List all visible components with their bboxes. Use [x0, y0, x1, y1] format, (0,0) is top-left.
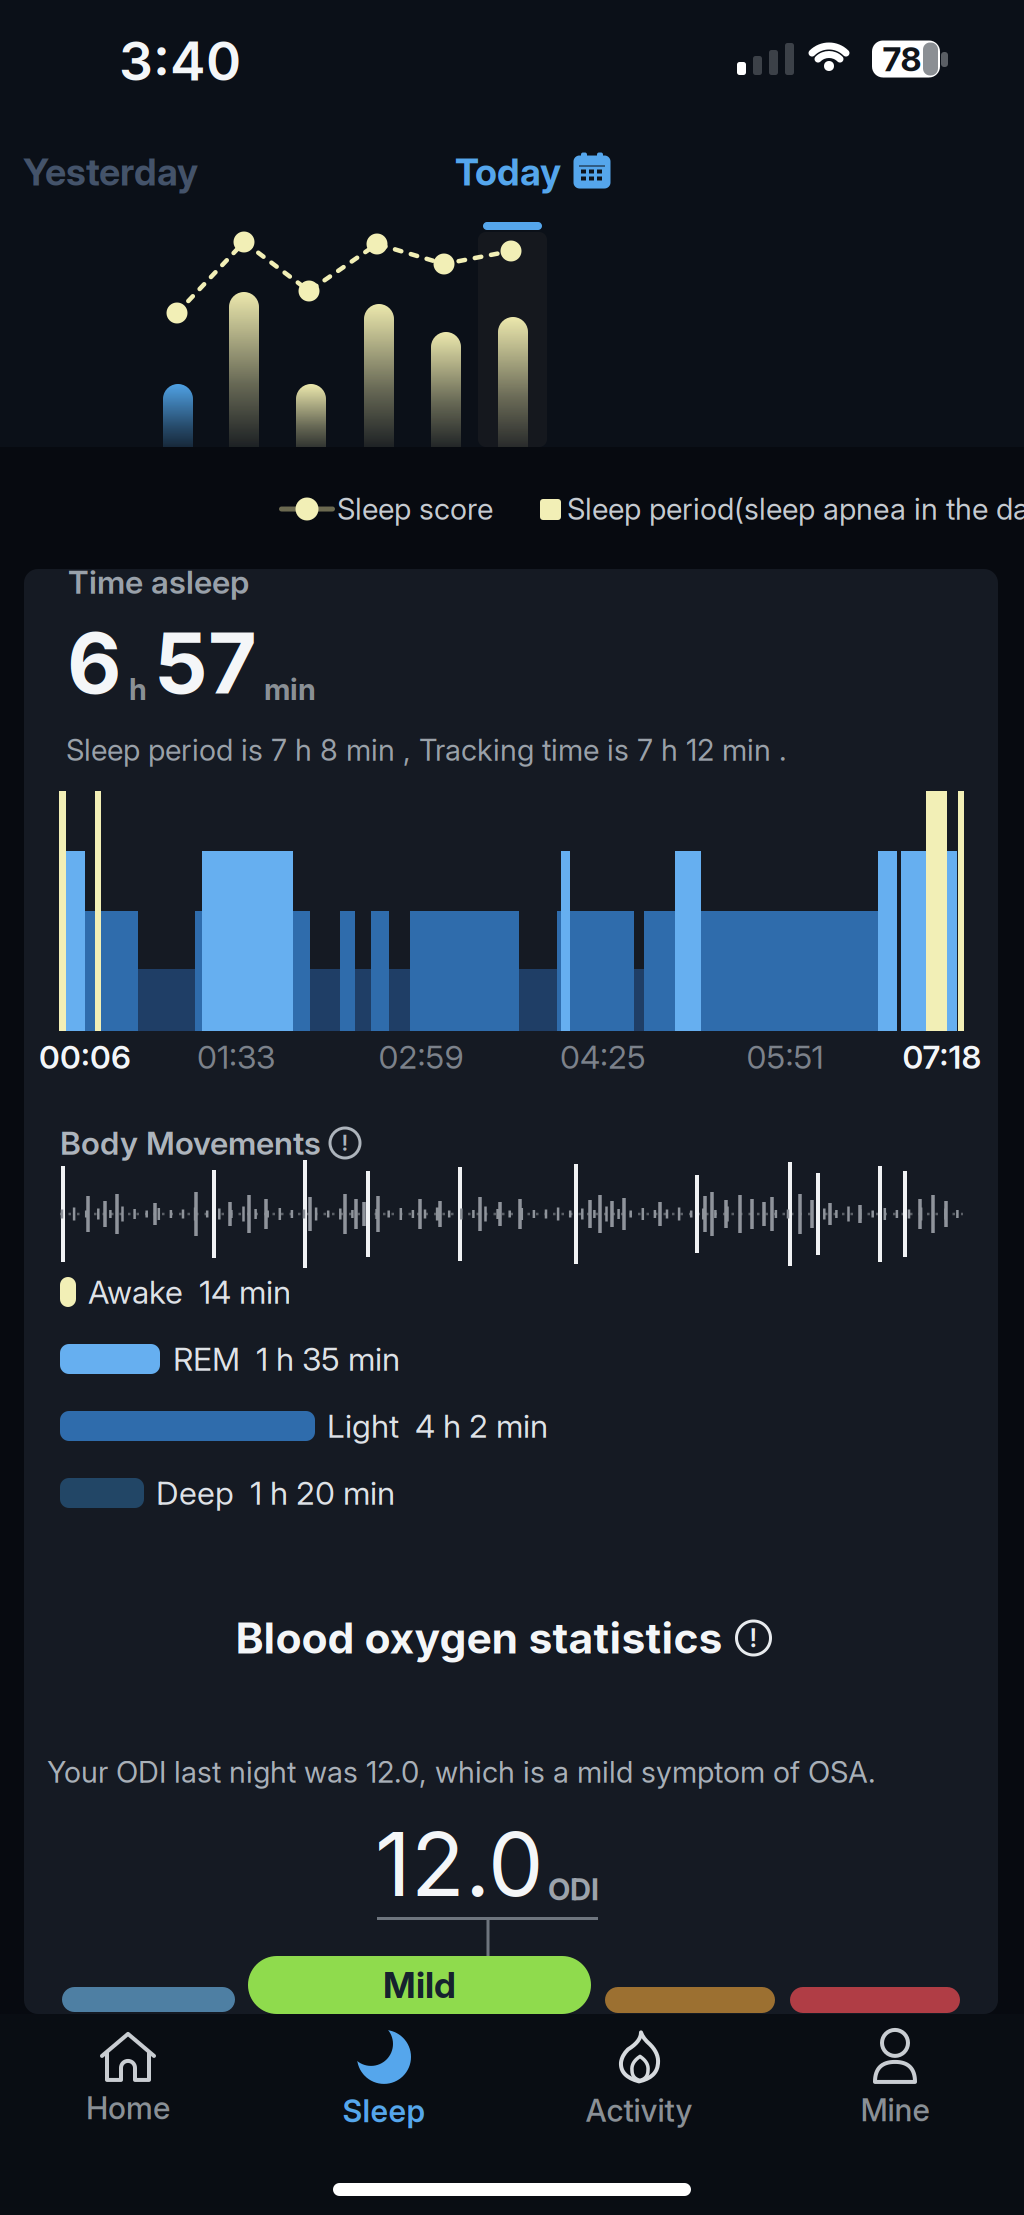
staticText: Sleep period(sleep apnea in the day [567, 492, 1024, 526]
staticText: Light 4 h 2 min [327, 1407, 548, 1445]
staticText: Body Movements [60, 1124, 321, 1162]
staticText: Time asleep [68, 563, 249, 601]
staticText: 78 [882, 39, 921, 79]
staticText: 04:25 [560, 1038, 646, 1076]
staticText: Home [86, 2090, 170, 2126]
staticText: 6 [67, 613, 122, 713]
staticText: min [264, 672, 316, 706]
staticText: ODI [548, 1872, 599, 1907]
button[interactable]: Mine [860, 2030, 929, 2128]
button[interactable]: Body movements info [330, 1128, 360, 1158]
staticText: 57 [154, 613, 257, 713]
staticText: Mild [383, 1964, 456, 2006]
staticText: Mine [860, 2092, 929, 2128]
staticText: Sleep [342, 2093, 425, 2129]
staticText: 12.0 [375, 1812, 544, 1916]
staticText: REM 1 h 35 min [173, 1340, 400, 1378]
staticText: Deep 1 h 20 min [156, 1474, 395, 1512]
staticText: ! [341, 1130, 348, 1156]
staticText: 02:59 [378, 1038, 463, 1076]
staticText: Your ODI last night was 12.0, which is a… [47, 1755, 876, 1789]
staticText: Yesterday [23, 150, 198, 194]
staticText: Blood oxygen statistics [235, 1613, 722, 1663]
staticText: 3:40 [119, 29, 241, 92]
button[interactable]: Today [455, 150, 611, 194]
staticText: Sleep period is 7 h 8 min , Tracking tim… [66, 733, 787, 767]
staticText: Today [455, 150, 561, 194]
button[interactable]: Yesterday [23, 150, 323, 194]
staticText: 01:33 [197, 1038, 275, 1076]
staticText: 05:51 [746, 1038, 823, 1076]
staticText: 07:18 [902, 1038, 981, 1076]
button[interactable]: Activity [585, 2029, 692, 2129]
staticText: h [129, 672, 147, 706]
staticText: ! [749, 1623, 757, 1653]
staticText: Sleep score [337, 492, 493, 526]
staticText: Awake 14 min [88, 1273, 291, 1311]
button[interactable]: Sleep [342, 2029, 425, 2129]
staticText: Activity [585, 2092, 692, 2129]
staticText: 00:06 [39, 1038, 131, 1076]
button[interactable]: Blood oxygen info [736, 1621, 770, 1655]
button[interactable]: Home [86, 2032, 170, 2126]
